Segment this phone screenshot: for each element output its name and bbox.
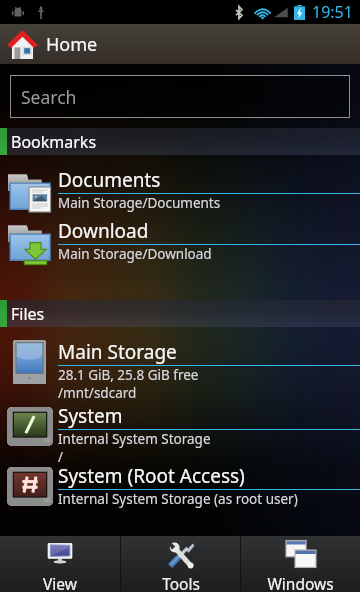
- staticText: 28.1 GiB, 25.8 GiB free: [58, 366, 199, 384]
- button[interactable]: Main Storage: [0, 327, 360, 402]
- staticText: Main Storage: [58, 339, 177, 365]
- staticText: Files: [11, 303, 45, 325]
- button[interactable]: Windows: [241, 536, 360, 592]
- staticText: /mnt/sdcard: [58, 384, 137, 402]
- button[interactable]: Search: [10, 75, 350, 118]
- staticText: Main Storage/Documents: [58, 194, 221, 212]
- staticText: Documents: [58, 167, 161, 193]
- button[interactable]: System: [0, 391, 360, 466]
- button[interactable]: Tools: [121, 536, 240, 592]
- button[interactable]: Download: [0, 206, 360, 266]
- staticText: Tools: [162, 573, 200, 592]
- button[interactable]: System (Root Access): [0, 451, 360, 509]
- staticText: Bookmarks: [11, 131, 97, 153]
- staticText: Home: [46, 32, 98, 57]
- staticText: View: [43, 573, 77, 592]
- button[interactable]: Files: [0, 300, 360, 327]
- staticText: System: [58, 403, 123, 429]
- staticText: Search: [21, 85, 77, 109]
- staticText: Download: [58, 218, 149, 244]
- staticText: /: [58, 448, 64, 466]
- staticText: Windows: [267, 573, 334, 592]
- staticText: System (Root Access): [58, 463, 245, 489]
- staticText: Main Storage/Download: [58, 245, 212, 263]
- button[interactable]: Bookmarks: [0, 128, 360, 155]
- staticText: Internal System Storage (as root user): [58, 490, 298, 508]
- staticText: 19:51: [312, 1, 353, 23]
- button[interactable]: Home: [0, 24, 360, 64]
- button[interactable]: View: [0, 536, 120, 592]
- staticText: Internal System Storage: [58, 430, 211, 448]
- button[interactable]: Documents: [0, 155, 360, 215]
